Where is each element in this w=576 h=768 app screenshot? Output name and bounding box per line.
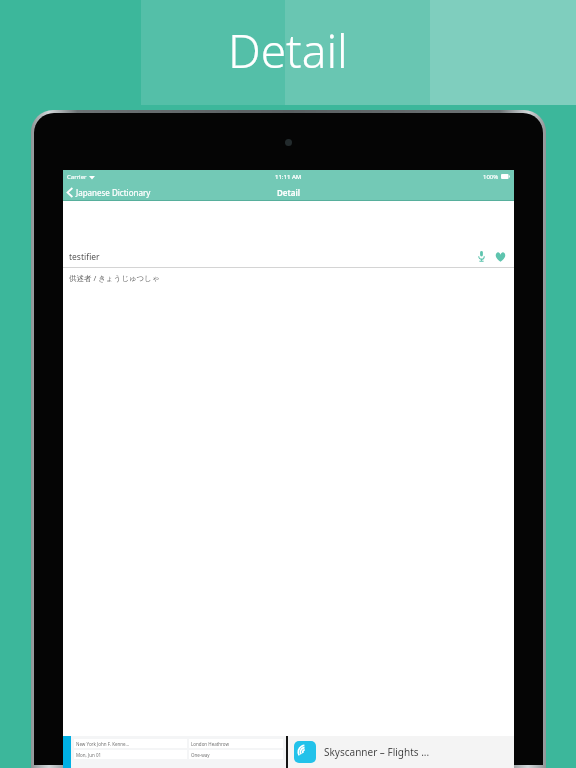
button[interactable]: Voice search: [476, 249, 487, 264]
staticText: 100%: [483, 173, 499, 181]
button[interactable]: Skyscanner advertisement: [63, 736, 514, 768]
staticText: Detail: [228, 19, 348, 82]
staticText: Carrier: [67, 173, 87, 181]
button[interactable]: 供述者 / きょうじゅつしゃ: [63, 268, 514, 288]
staticText: testifier: [69, 251, 100, 263]
staticText: Detail: [277, 187, 300, 198]
staticText: 11:11 AM: [275, 173, 302, 181]
button[interactable]: Japanese Dictionary: [63, 184, 157, 201]
staticText: Skyscanner – Flights ...: [324, 745, 430, 759]
staticText: Mon, Jun 01: [76, 752, 102, 758]
staticText: One-way: [191, 752, 210, 758]
staticText: London Heathrow: [191, 741, 230, 747]
staticText: New York John F. Kenne...: [76, 741, 130, 747]
button[interactable]: Favorite: [493, 250, 508, 264]
staticText: Japanese Dictionary: [76, 187, 151, 198]
staticText: 供述者 / きょうじゅつしゃ: [69, 273, 160, 283]
